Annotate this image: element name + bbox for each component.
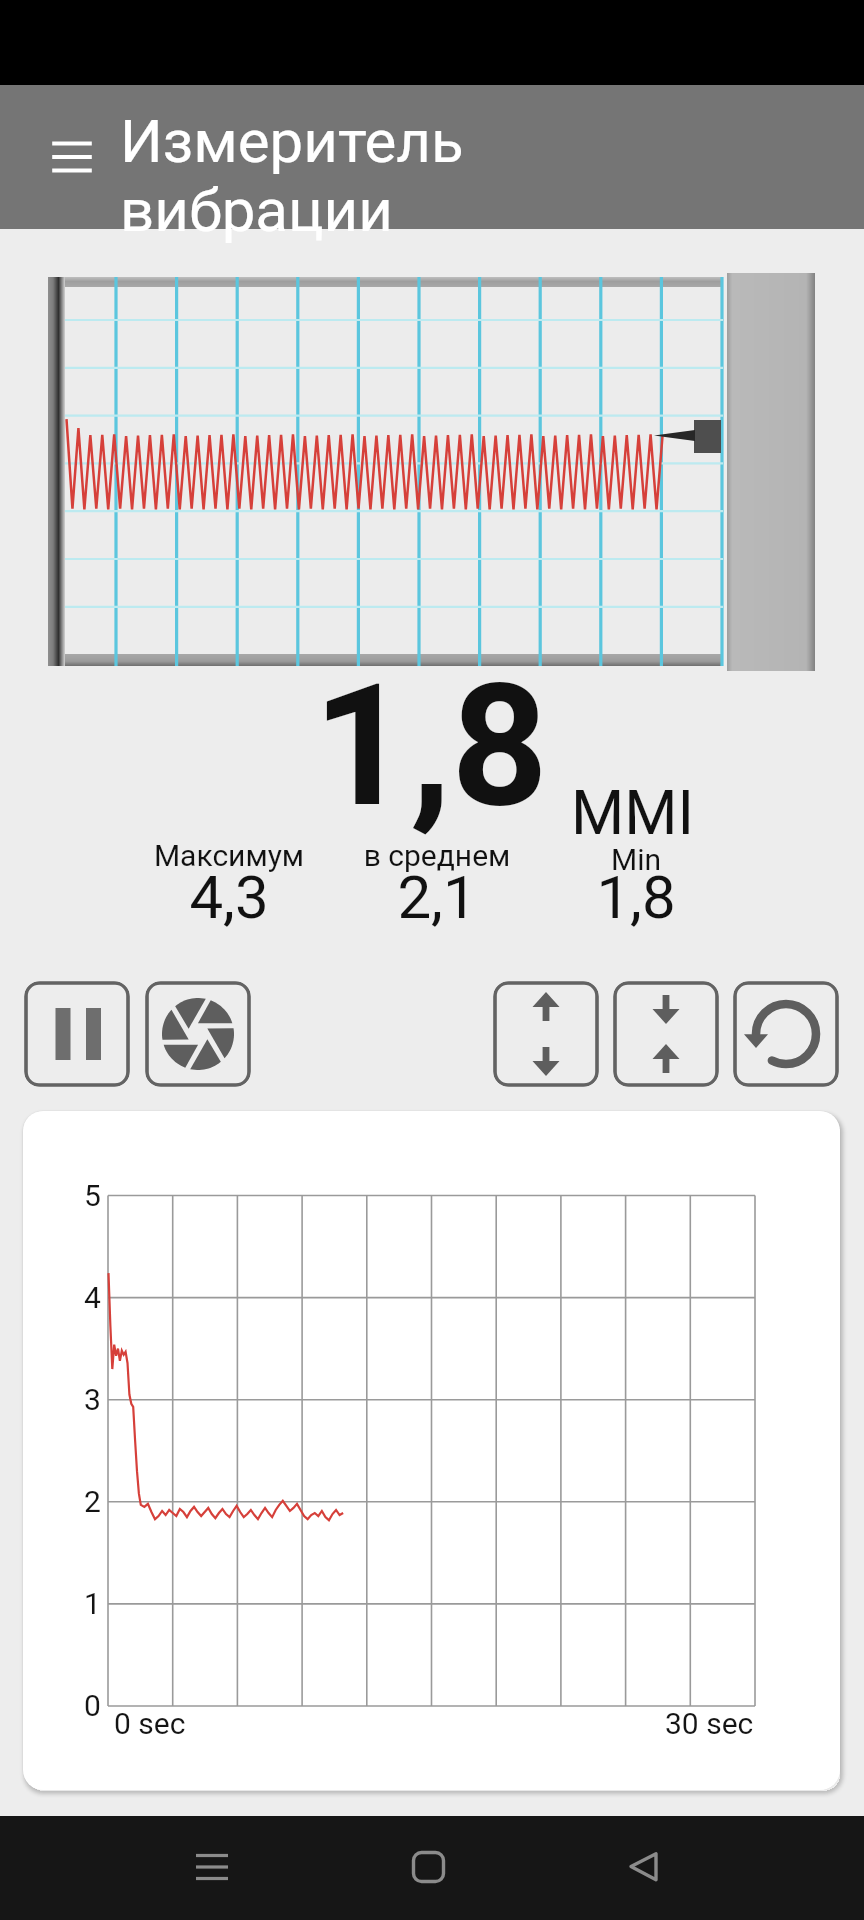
button[interactable]: Back — [592, 1816, 696, 1920]
staticText: 4 — [84, 1280, 101, 1315]
staticText: 2 — [84, 1484, 101, 1519]
button[interactable]: Expand scale — [493, 981, 599, 1087]
staticText: в среднем — [322, 838, 552, 873]
staticText: Измеритель вибрации — [120, 106, 540, 246]
staticText: 1,8 — [313, 647, 549, 845]
staticText: 0 — [84, 1688, 101, 1723]
staticText: 4,3 — [114, 862, 344, 932]
button[interactable]: Pause — [24, 981, 130, 1087]
staticText: Min — [521, 842, 751, 877]
staticText: 30 sec — [665, 1706, 754, 1741]
staticText: 1 — [84, 1586, 101, 1621]
button[interactable]: Shrink scale — [613, 981, 719, 1087]
staticText: 3 — [84, 1382, 101, 1417]
button[interactable]: Home — [376, 1816, 480, 1920]
button[interactable]: Reset — [733, 981, 839, 1087]
staticText: 1,8 — [521, 862, 751, 932]
staticText: 5 — [84, 1178, 101, 1213]
staticText: MMI — [571, 777, 695, 848]
staticText: Максимум — [114, 838, 344, 873]
button[interactable]: Recent apps — [160, 1816, 264, 1920]
staticText: 0 sec — [114, 1706, 186, 1741]
button[interactable]: Capture snapshot — [145, 981, 251, 1087]
button[interactable]: Open navigation menu — [34, 119, 110, 195]
staticText: 2,1 — [322, 862, 552, 932]
